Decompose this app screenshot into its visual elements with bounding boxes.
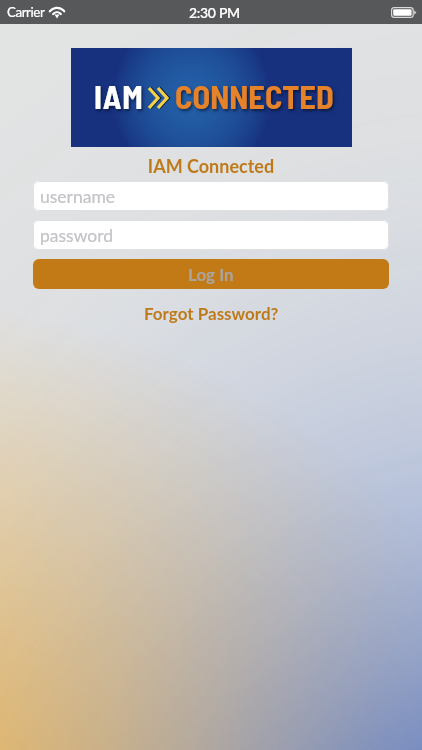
button[interactable]: Forgot Password? [134,301,289,325]
staticText: Carrier [7,4,45,20]
staticText: username [40,186,116,207]
staticText: IAM Connected [0,155,422,177]
button[interactable]: password [33,220,389,250]
button[interactable]: Log In [33,259,389,289]
staticText: Forgot Password? [144,303,279,323]
button[interactable]: username [33,181,389,211]
staticText: CONNECTED [175,76,334,115]
staticText: password [40,225,114,246]
staticText: Log In [188,264,234,284]
staticText: 2:30 PM [189,4,240,21]
staticText: IAM [94,76,144,115]
